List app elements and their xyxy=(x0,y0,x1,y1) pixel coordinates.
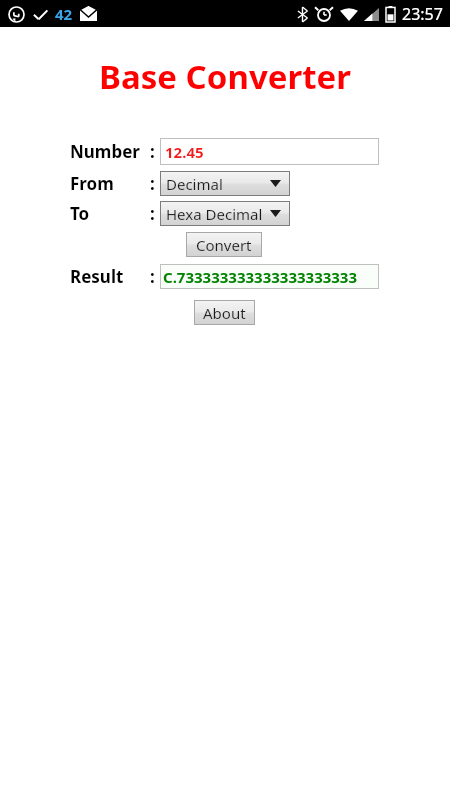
button[interactable]: Hexa Decimal xyxy=(160,201,290,226)
staticText: C.733333333333333333333 xyxy=(163,267,358,287)
staticText: 12.45 xyxy=(165,142,204,162)
staticText: : xyxy=(150,265,155,288)
staticText: : xyxy=(150,172,155,195)
staticText: : xyxy=(150,140,155,163)
staticText: To xyxy=(70,202,90,225)
staticText: Result xyxy=(70,265,124,288)
staticText: Convert xyxy=(196,235,252,255)
staticText: 23:57 xyxy=(402,3,443,25)
button[interactable]: About xyxy=(194,300,255,325)
staticText: 42 xyxy=(55,4,73,24)
staticText: Hexa Decimal xyxy=(166,204,263,224)
staticText: Base Converter xyxy=(0,54,450,99)
staticText: About xyxy=(203,303,246,323)
staticText: Decimal xyxy=(166,174,223,194)
button[interactable]: C.733333333333333333333 xyxy=(160,264,379,289)
button[interactable]: Convert xyxy=(186,232,262,257)
staticText: From xyxy=(70,172,114,195)
button[interactable]: Decimal xyxy=(160,171,290,196)
button[interactable]: 12.45 xyxy=(160,138,379,165)
staticText: : xyxy=(150,202,155,225)
staticText: Number xyxy=(70,140,140,163)
